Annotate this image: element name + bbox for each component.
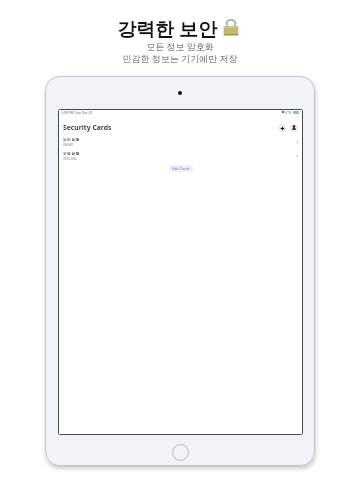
- staticText: 보안 은행: [63, 137, 80, 142]
- staticText: 우영 은행: [63, 151, 80, 156]
- staticText: 7059-2206: [63, 157, 77, 161]
- staticText: Security Cards: [63, 123, 112, 132]
- staticText: 3:08 PM Sun Dec 20: [61, 110, 93, 114]
- button[interactable]: Edit Cards: [169, 165, 193, 172]
- staticText: 61%: [285, 110, 292, 114]
- button[interactable]: 보안 은행: [58, 137, 303, 147]
- staticText: 강력한 보안: [117, 16, 217, 42]
- button[interactable]: Account: [290, 124, 298, 132]
- staticText: Edit Cards: [172, 166, 190, 171]
- button[interactable]: Add card: [278, 124, 286, 132]
- staticText: 모든 정보 암호화: [146, 40, 214, 52]
- staticText: BANK01: [63, 143, 74, 147]
- button[interactable]: 우영 은행: [58, 151, 303, 161]
- staticText: 민감한 정보는 기기에만 저장: [122, 52, 238, 64]
